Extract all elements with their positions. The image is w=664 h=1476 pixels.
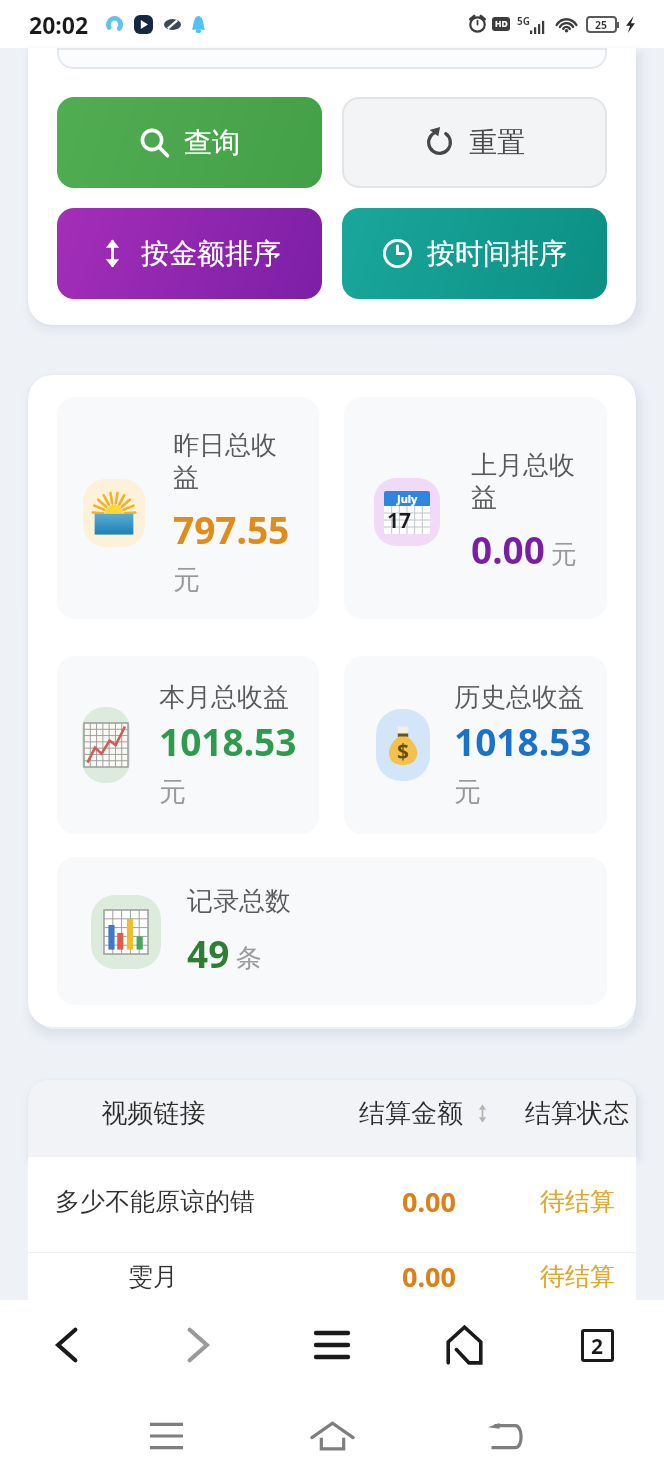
staticText: 本月总收益 <box>159 681 289 714</box>
staticText: 25 <box>595 18 608 32</box>
staticText: 1018.53 <box>454 716 592 766</box>
staticText: 待结算 <box>540 1186 615 1217</box>
staticText: 重置 <box>469 125 525 160</box>
staticText: HD <box>495 18 508 30</box>
staticText: 雯月 <box>128 1261 178 1292</box>
staticText: 1018.53 <box>159 716 297 766</box>
staticText: 查询 <box>184 125 240 160</box>
staticText: 昨日总收益 <box>173 429 285 494</box>
staticText: 元 <box>159 775 186 809</box>
button[interactable]: Back <box>0 1300 132 1390</box>
staticText: 按金额排序 <box>141 236 281 271</box>
staticText: 历史总收益 <box>454 681 584 714</box>
staticText: 按时间排序 <box>427 236 567 271</box>
staticText: 视频链接 <box>28 1097 279 1130</box>
button[interactable]: Menu <box>265 1300 398 1390</box>
button[interactable]: Tabs <box>531 1300 664 1390</box>
button[interactable]: $ <box>344 656 607 834</box>
button[interactable]: 昨日总收益 <box>57 397 319 619</box>
button[interactable]: Home <box>398 1300 531 1390</box>
button[interactable]: July <box>344 397 607 619</box>
staticText: 17 <box>387 506 412 534</box>
staticText: 0.00 <box>471 524 545 574</box>
button[interactable]: 雯月 <box>28 1253 636 1300</box>
staticText: 20:02 <box>29 9 89 40</box>
button[interactable]: Recents <box>128 1406 204 1466</box>
button[interactable]: 按时间排序 <box>342 208 607 299</box>
staticText: $ <box>397 737 410 766</box>
staticText: 多少不能原谅的错 <box>55 1186 255 1217</box>
staticText: 5G <box>517 14 530 28</box>
staticText: 上月总收益 <box>471 449 583 514</box>
staticText: 元 <box>551 538 577 571</box>
staticText: July <box>397 491 418 506</box>
staticText: 797.55 <box>173 504 290 554</box>
staticText: 条 <box>236 942 262 975</box>
button[interactable]: 本月总收益 <box>57 656 319 834</box>
button[interactable]: 查询 <box>57 97 322 188</box>
button[interactable]: 多少不能原谅的错 <box>28 1157 636 1246</box>
button[interactable]: 按金额排序 <box>57 208 322 299</box>
button[interactable]: Back <box>467 1406 544 1466</box>
button[interactable]: Home <box>286 1406 378 1466</box>
staticText: 0.00 <box>402 1183 456 1220</box>
staticText: 记录总数 <box>187 885 291 918</box>
staticText: 待结算 <box>540 1261 615 1292</box>
staticText: 元 <box>454 775 481 809</box>
staticText: 元 <box>173 563 200 597</box>
button[interactable]: Forward <box>132 1300 265 1390</box>
button[interactable]: 重置 <box>342 97 607 188</box>
staticText: 结算状态 <box>525 1097 629 1130</box>
button[interactable]: 记录总数 <box>57 857 607 1005</box>
staticText: 49 <box>187 928 230 978</box>
staticText: 结算金额 <box>359 1097 463 1130</box>
staticText: 0.00 <box>402 1258 456 1295</box>
staticText: 2 <box>591 1332 604 1359</box>
